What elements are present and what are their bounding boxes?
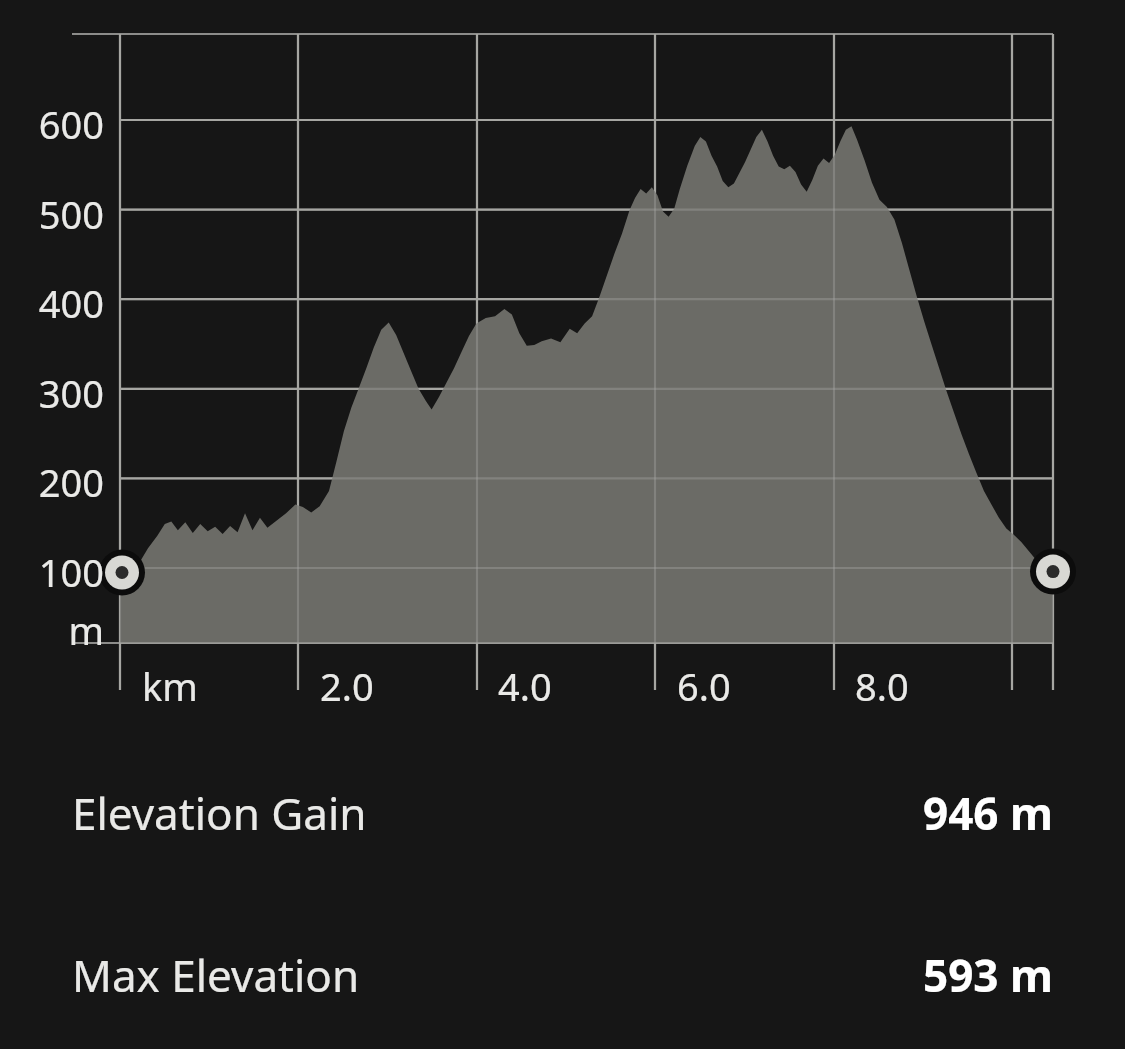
staticText: km (142, 660, 198, 712)
staticText: 593 m (923, 945, 1053, 1005)
button[interactable]: Elevation Gain (0, 762, 1125, 864)
staticText: 100 (0, 546, 104, 598)
staticText: 8.0 (855, 660, 909, 712)
staticText: 300 (0, 367, 104, 419)
staticText: Elevation Gain (72, 783, 367, 843)
staticText: 600 (0, 98, 104, 150)
staticText: 6.0 (677, 660, 731, 712)
staticText: 500 (0, 188, 104, 240)
staticText: 4.0 (498, 660, 552, 712)
staticText: 200 (0, 456, 104, 508)
button[interactable]: Max Elevation (0, 924, 1125, 1026)
staticText: 400 (0, 277, 104, 329)
staticText: 2.0 (320, 660, 374, 712)
other: Elevation profile chart (0, 0, 1125, 710)
staticText: Max Elevation (72, 945, 360, 1005)
staticText: 946 m (923, 783, 1053, 843)
staticText: m (0, 604, 104, 656)
